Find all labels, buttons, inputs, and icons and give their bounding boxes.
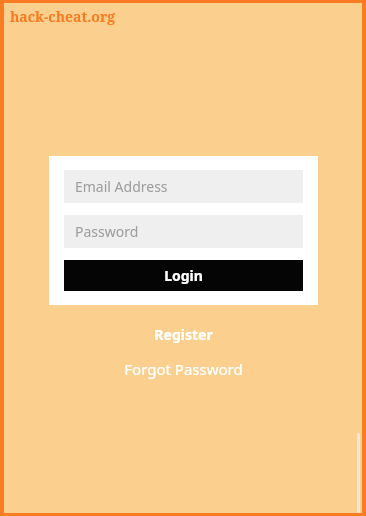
button[interactable]: Password (64, 215, 303, 248)
button[interactable]: Email Address (64, 170, 303, 203)
staticText: Login (164, 266, 203, 285)
staticText: hack-cheat.org (10, 7, 116, 26)
button[interactable]: Register (140, 321, 227, 348)
staticText: Register (154, 325, 213, 344)
staticText: Password (75, 222, 139, 241)
button[interactable]: Forgot Password (110, 355, 257, 383)
button[interactable]: Login (64, 260, 303, 291)
staticText: Email Address (75, 177, 168, 196)
staticText: Forgot Password (124, 359, 243, 379)
